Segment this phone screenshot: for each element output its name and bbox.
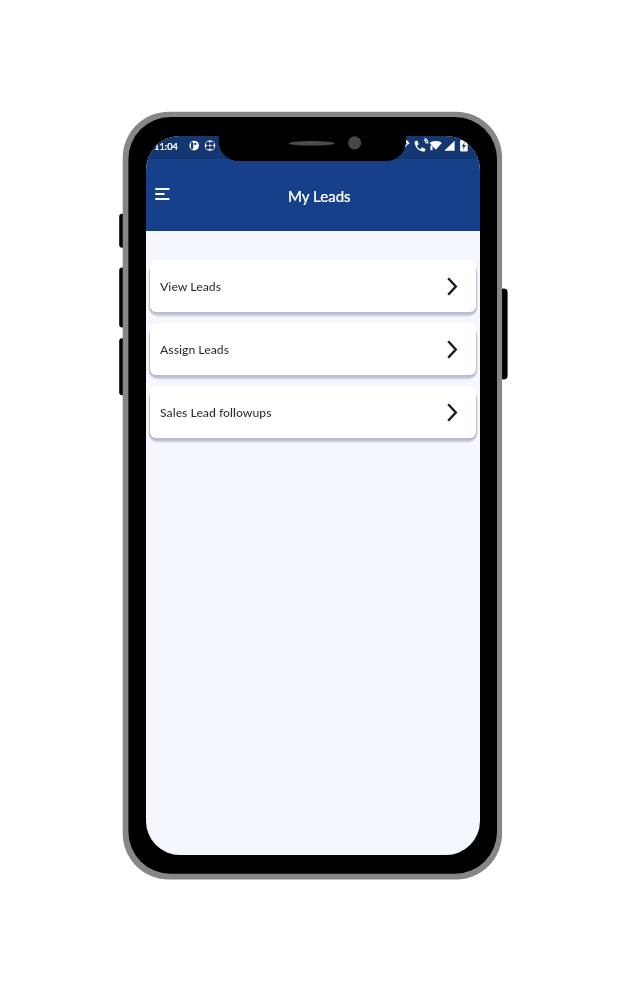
button[interactable]: Open navigation menu	[148, 180, 176, 208]
button[interactable]: Sales Lead followups	[150, 386, 476, 438]
button[interactable]: Assign Leads	[150, 323, 476, 375]
staticText: View Leads	[160, 279, 221, 294]
button[interactable]: View Leads	[150, 260, 476, 312]
staticText: Assign Leads	[160, 342, 229, 357]
staticText: My Leads	[288, 187, 351, 205]
staticText: 11:04	[154, 141, 178, 152]
staticText: Sales Lead followups	[160, 405, 272, 420]
